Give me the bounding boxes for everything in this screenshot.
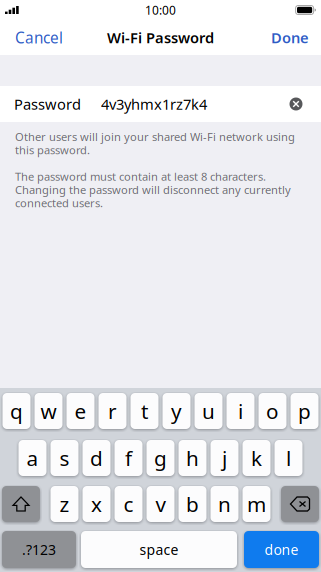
staticText: 4v3yhmx1rz7k4 (101, 94, 207, 114)
staticText: 10:00 (145, 2, 176, 18)
staticText: .?123 (22, 540, 56, 559)
staticText: Cancel (15, 27, 63, 48)
staticText: p (298, 397, 311, 425)
button[interactable]: .?123 (2, 531, 76, 568)
button[interactable]: p (290, 393, 318, 429)
button[interactable]: f (114, 440, 142, 476)
staticText: The password must contain at least 8 cha… (15, 170, 291, 210)
button[interactable]: w (34, 393, 62, 429)
staticText: Wi-Fi Password (107, 27, 214, 47)
button[interactable]: m (242, 486, 270, 522)
button[interactable]: Clear text (284, 92, 308, 116)
staticText: e (74, 397, 86, 425)
staticText: s (59, 444, 69, 472)
staticText: l (286, 444, 291, 472)
button[interactable]: g (146, 440, 174, 476)
button[interactable]: Delete (281, 486, 319, 522)
staticText: o (266, 397, 279, 425)
staticText: b (186, 490, 199, 518)
button[interactable]: o (258, 393, 286, 429)
staticText: j (222, 444, 227, 472)
staticText: Other users will join your shared Wi-Fi … (15, 130, 295, 157)
button[interactable]: k (242, 440, 270, 476)
button[interactable]: y (162, 393, 190, 429)
button[interactable]: h (178, 440, 206, 476)
staticText: q (10, 397, 23, 425)
button[interactable]: v (146, 486, 174, 522)
staticText: a (26, 444, 38, 472)
button[interactable]: Password (0, 86, 321, 122)
staticText: Password (14, 94, 81, 114)
staticText: d (90, 444, 103, 472)
staticText: z (59, 490, 69, 518)
staticText: h (186, 444, 199, 472)
button[interactable]: Cancel (0, 20, 73, 55)
button[interactable]: d (82, 440, 110, 476)
staticText: k (251, 444, 262, 472)
button[interactable]: u (194, 393, 222, 429)
button[interactable]: i (226, 393, 254, 429)
staticText: Done (271, 27, 309, 47)
button[interactable]: r (98, 393, 126, 429)
button[interactable]: q (2, 393, 30, 429)
button[interactable]: j (210, 440, 238, 476)
button[interactable]: space (81, 531, 237, 568)
button[interactable]: Done (261, 20, 321, 55)
staticText: w (40, 397, 56, 425)
button[interactable]: z (50, 486, 78, 522)
button[interactable]: x (82, 486, 110, 522)
staticText: done (264, 540, 298, 559)
staticText: n (218, 490, 231, 518)
button[interactable]: n (210, 486, 238, 522)
staticText: space (139, 540, 178, 559)
button[interactable]: a (18, 440, 46, 476)
button[interactable]: t (130, 393, 158, 429)
staticText: i (238, 397, 243, 425)
button[interactable]: done (244, 531, 319, 568)
staticText: f (125, 444, 132, 472)
button[interactable]: l (274, 440, 302, 476)
staticText: r (108, 397, 117, 425)
button[interactable]: s (50, 440, 78, 476)
staticText: t (141, 397, 148, 425)
staticText: x (91, 490, 102, 518)
button[interactable]: e (66, 393, 94, 429)
staticText: v (155, 490, 165, 518)
button[interactable]: c (114, 486, 142, 522)
button[interactable]: b (178, 486, 206, 522)
staticText: y (171, 397, 182, 425)
button[interactable]: Shift (2, 486, 40, 522)
staticText: u (202, 397, 215, 425)
staticText: c (123, 490, 133, 518)
staticText: g (154, 444, 167, 472)
staticText: m (247, 490, 266, 518)
